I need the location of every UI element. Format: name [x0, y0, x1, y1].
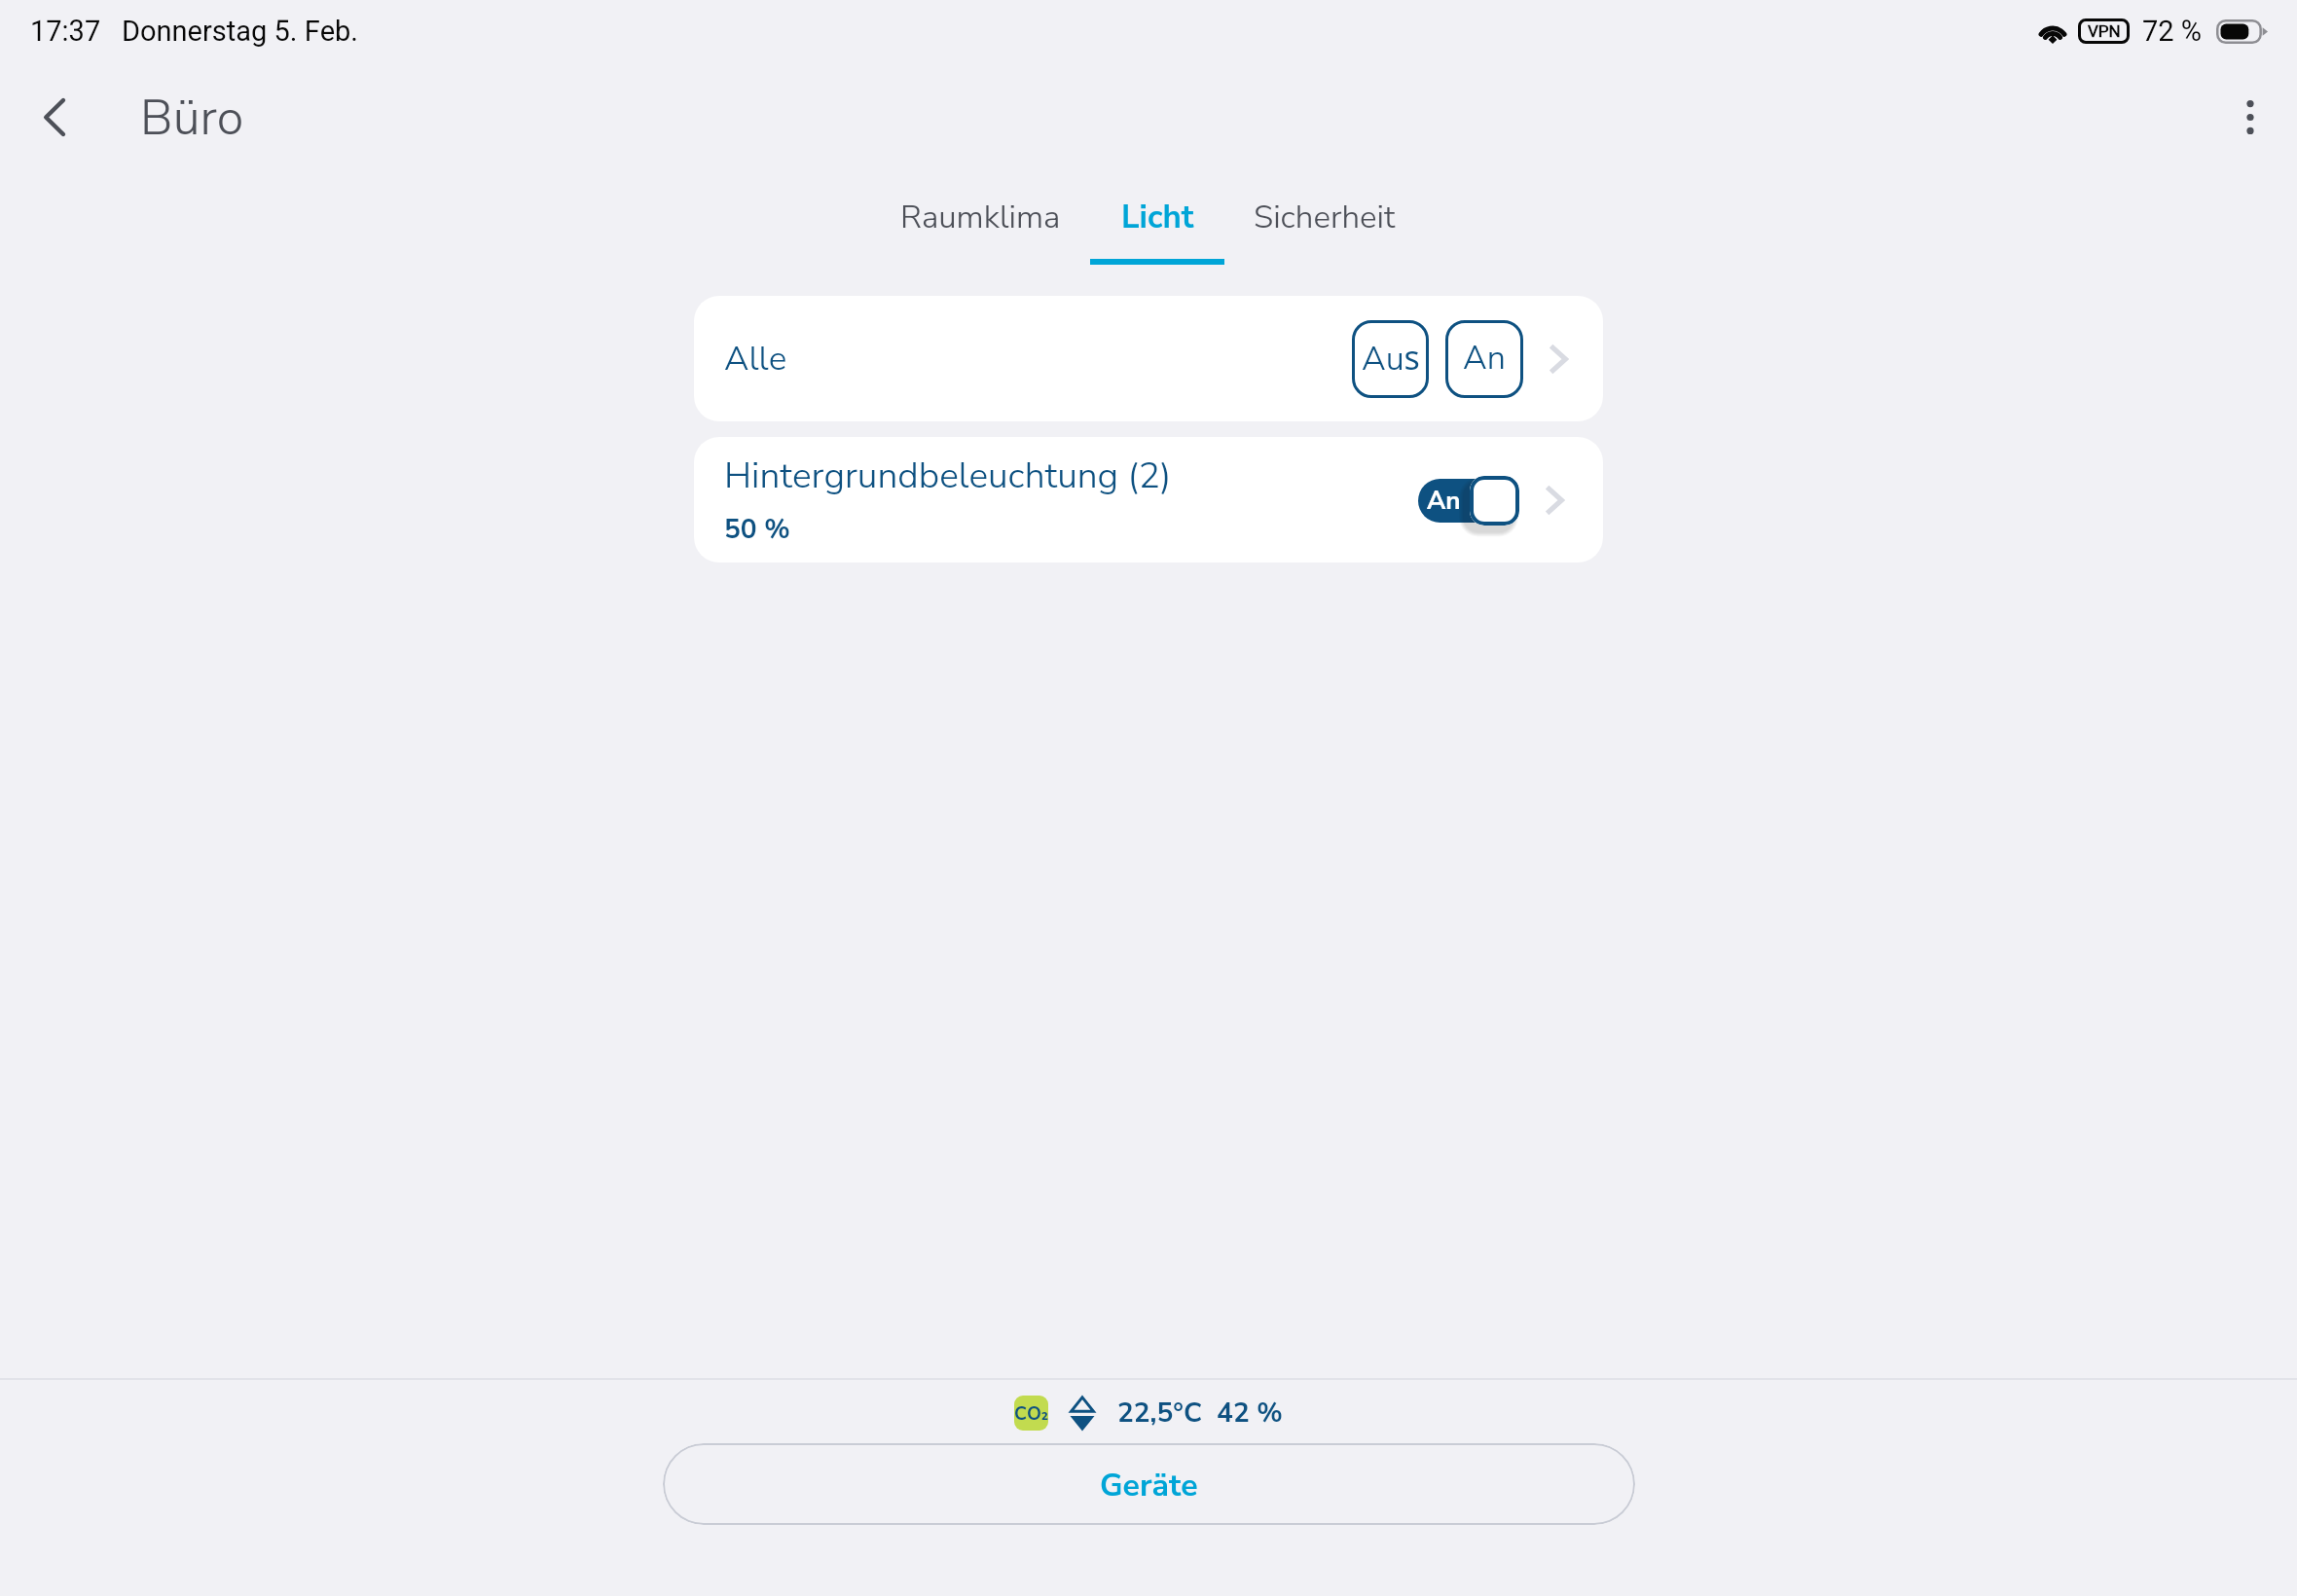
- button[interactable]: An: [1445, 320, 1523, 398]
- button[interactable]: Hintergrundbeleuchtung (2): [694, 437, 1603, 562]
- staticText: Licht: [1121, 196, 1194, 239]
- staticText: Sicherheit: [1254, 196, 1396, 239]
- button[interactable]: Raumklima: [891, 185, 1070, 274]
- button[interactable]: Geräte: [663, 1443, 1635, 1525]
- staticText: 22,5°C 42 %: [1117, 1395, 1283, 1432]
- button[interactable]: Alle: [694, 296, 1603, 421]
- staticText: Raumklima: [900, 196, 1061, 239]
- staticText: Büro: [140, 85, 244, 151]
- staticText: Geräte: [1100, 1465, 1198, 1507]
- staticText: Hintergrundbeleuchtung (2): [724, 452, 1172, 500]
- staticText: Aus: [1362, 335, 1420, 381]
- staticText: An: [1463, 336, 1506, 381]
- button[interactable]: Backlight toggle, on: [1418, 475, 1519, 526]
- staticText: 72 %: [2142, 15, 2203, 48]
- button[interactable]: Sicherheit: [1235, 185, 1414, 274]
- button[interactable]: Back: [8, 70, 101, 163]
- staticText: Donnerstag 5. Feb.: [122, 15, 358, 48]
- staticText: An: [1427, 484, 1461, 518]
- staticText: VPN: [2088, 21, 2121, 41]
- button[interactable]: Licht: [1068, 185, 1247, 274]
- staticText: 50 %: [724, 511, 790, 548]
- button[interactable]: More options: [2204, 70, 2297, 163]
- staticText: Alle: [724, 336, 787, 382]
- staticText: CO₂: [1014, 1401, 1048, 1427]
- button[interactable]: Aus: [1352, 320, 1429, 398]
- staticText: 17:37: [30, 15, 101, 48]
